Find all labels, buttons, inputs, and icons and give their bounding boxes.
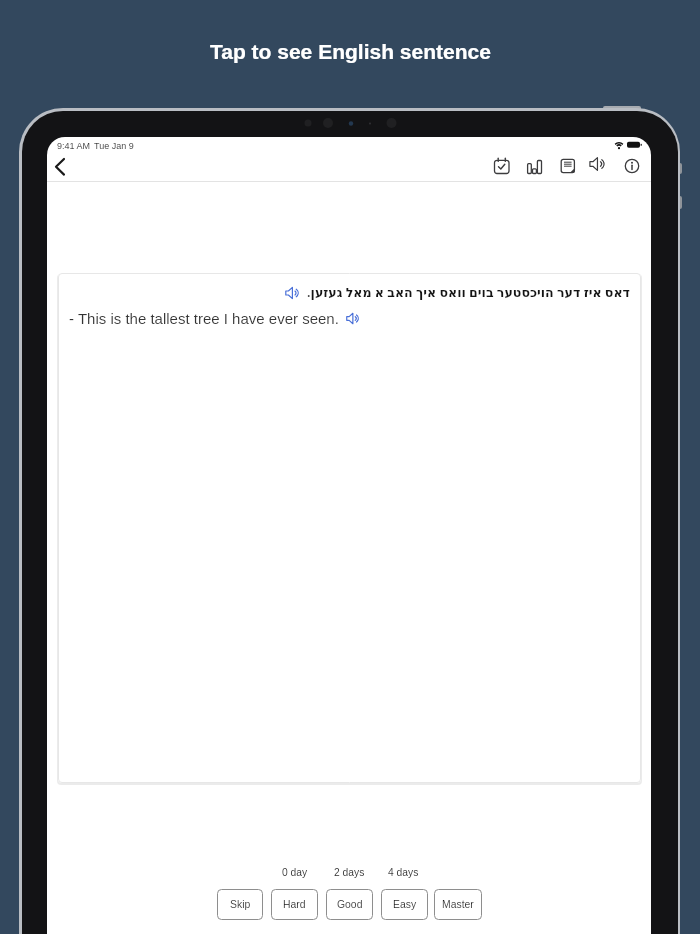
button[interactable]	[589, 156, 609, 176]
staticText: 0 day	[282, 867, 308, 879]
button[interactable]	[346, 312, 360, 326]
staticText: Easy	[393, 899, 417, 911]
staticText: Skip	[230, 899, 251, 911]
staticText: Master	[442, 899, 474, 911]
button[interactable]: Hard	[271, 889, 318, 920]
button[interactable]: Good	[326, 889, 373, 920]
staticText: 2 days	[334, 867, 365, 879]
staticText: 4 days	[388, 867, 419, 879]
staticText: - This is the tallest tree I have ever s…	[69, 310, 339, 327]
button[interactable]	[285, 286, 299, 300]
button[interactable]	[49, 152, 75, 180]
button[interactable]: Skip	[217, 889, 263, 920]
button[interactable]: Easy	[381, 889, 428, 920]
button[interactable]	[492, 156, 512, 176]
button[interactable]	[525, 156, 545, 176]
staticText: Hard	[283, 899, 306, 911]
staticText: 9:41 AM	[57, 141, 91, 151]
button[interactable]: Master	[434, 889, 482, 920]
staticText: Tue Jan 9	[94, 141, 134, 151]
staticText: Tap to see English sentence	[210, 40, 491, 63]
staticText: דאס איז דער הויכסטער בוים וואס איך האב א…	[307, 284, 630, 301]
button[interactable]	[558, 156, 578, 176]
button[interactable]	[622, 156, 642, 176]
staticText: Good	[337, 899, 363, 911]
